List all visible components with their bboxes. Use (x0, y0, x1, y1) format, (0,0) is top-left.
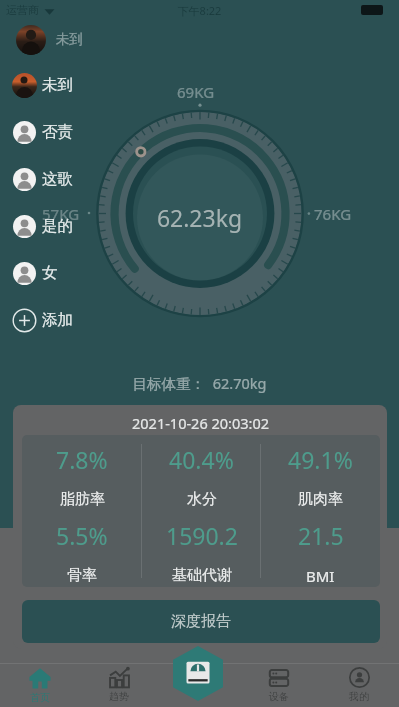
staticText: 我的 (349, 690, 369, 703)
staticText: 女 (42, 263, 58, 283)
button[interactable]: 女 (12, 259, 58, 287)
staticText: 是的 (42, 216, 73, 236)
staticText: 基础代谢 (172, 566, 232, 585)
staticText: 未到 (56, 31, 83, 48)
staticText: 趋势 (109, 690, 129, 703)
button[interactable]: 是的 (12, 212, 73, 240)
button[interactable]: 否责 (12, 118, 73, 146)
staticText: 40.4% (169, 444, 234, 475)
button[interactable]: 5.5% (22, 511, 142, 587)
staticText: 下午8:22 (0, 3, 399, 18)
staticText: 2021-10-26 20:03:02 (132, 413, 269, 433)
staticText: 设备 (269, 690, 289, 703)
button[interactable]: Measure weight (173, 646, 223, 701)
staticText: 水分 (187, 490, 217, 509)
staticText: 76KG (314, 204, 352, 224)
staticText: 这歌 (42, 169, 73, 189)
staticText: 7.8% (56, 444, 108, 475)
staticText: 否责 (42, 122, 73, 142)
button[interactable]: 40.4% (142, 435, 261, 511)
staticText: 目标体重： 62.70kg (0, 373, 399, 393)
button[interactable]: 未到 (16, 24, 83, 55)
button[interactable]: 趋势 (79, 663, 159, 707)
button[interactable]: 未到 (12, 71, 73, 99)
staticText: 深度报告 (171, 612, 231, 631)
staticText: 肌肉率 (298, 490, 343, 509)
button[interactable]: 21.5 (261, 511, 380, 587)
staticText: 未到 (42, 75, 73, 95)
button[interactable]: 1590.2 (142, 511, 261, 587)
staticText: 21.5 (298, 520, 344, 551)
staticText: 脂肪率 (60, 490, 105, 509)
staticText: 骨率 (67, 566, 97, 585)
staticText: 添加 (42, 310, 73, 330)
staticText: 49.1% (288, 444, 353, 475)
staticText: 首页 (30, 691, 50, 704)
staticText: 1590.2 (166, 520, 238, 551)
button[interactable]: 49.1% (261, 435, 380, 511)
staticText: 运营商 (6, 3, 39, 17)
button[interactable]: 这歌 (12, 165, 73, 193)
staticText: BMI (306, 566, 335, 586)
button[interactable]: 首页 (0, 663, 79, 707)
staticText: 69KG (177, 82, 215, 102)
button[interactable]: 添加 (12, 306, 73, 334)
button[interactable]: 我的 (319, 663, 399, 707)
staticText: 5.5% (56, 520, 108, 551)
staticText: 57KG (42, 204, 80, 224)
button[interactable]: 设备 (239, 663, 319, 707)
button[interactable]: 深度报告 (22, 600, 380, 643)
button[interactable]: 7.8% (22, 435, 142, 511)
staticText: 62.23kg (0, 202, 399, 233)
